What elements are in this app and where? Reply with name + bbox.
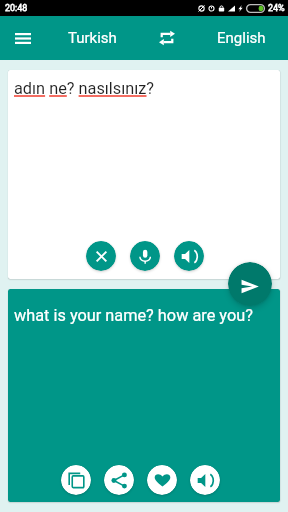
button[interactable]: what is your name? how are you? xyxy=(8,289,280,502)
button[interactable]: Listen xyxy=(174,241,204,271)
button[interactable]: Turkish xyxy=(44,16,141,60)
staticText: what is your name? how are you? xyxy=(14,306,253,325)
button[interactable]: Copy xyxy=(61,465,91,495)
button[interactable]: Open navigation menu xyxy=(0,16,46,60)
button[interactable]: adın ne? nasılsınız? xyxy=(8,70,280,279)
staticText: 20:48 xyxy=(5,3,28,14)
staticText: English xyxy=(217,29,266,47)
staticText: 24% xyxy=(268,3,285,14)
staticText: Turkish xyxy=(68,29,117,47)
button[interactable]: Translate xyxy=(228,262,272,306)
button[interactable]: Share xyxy=(104,465,134,495)
button[interactable]: Swap languages xyxy=(144,16,190,60)
button[interactable]: Voice input xyxy=(130,241,160,271)
button[interactable]: Listen xyxy=(190,465,220,495)
staticText: adın ne? nasılsınız? xyxy=(14,79,155,98)
button[interactable]: English xyxy=(192,16,288,60)
button[interactable]: Add to favourites xyxy=(147,465,177,495)
button[interactable]: Clear text xyxy=(86,241,116,271)
